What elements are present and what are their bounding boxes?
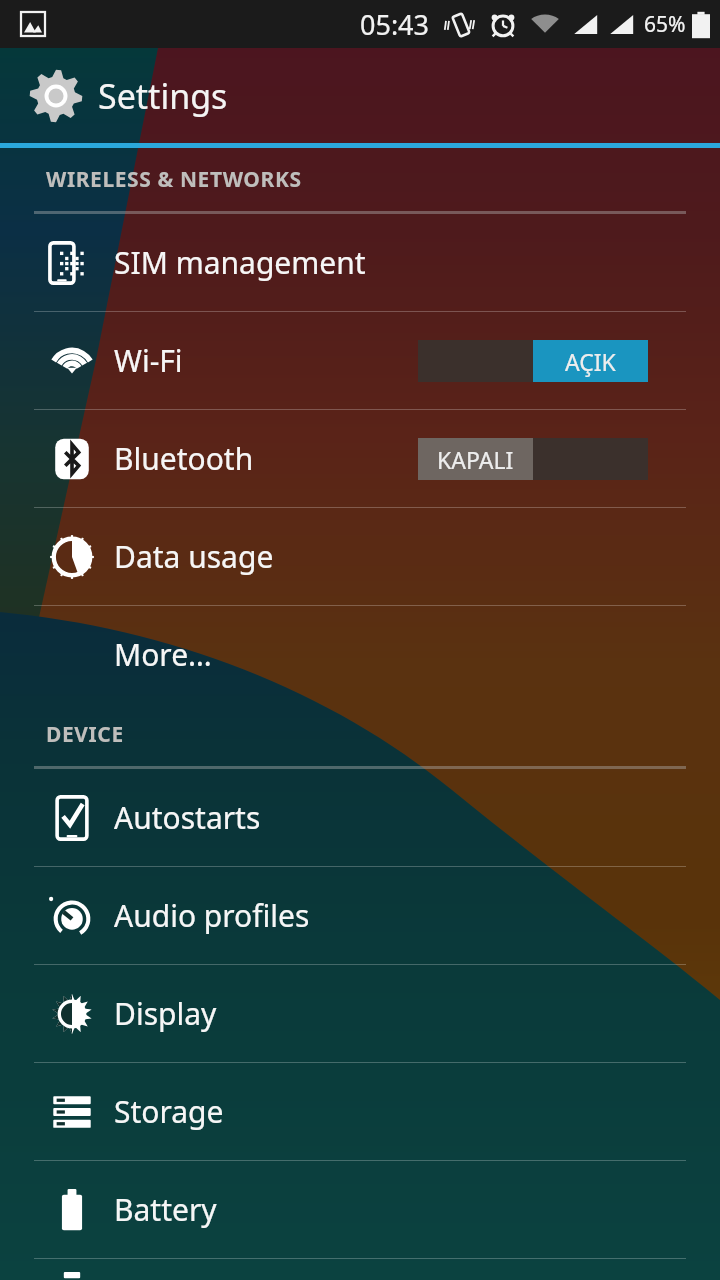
staticText: Bluetooth	[114, 438, 254, 479]
button[interactable]: Audio profiles	[0, 867, 720, 964]
staticText: Data usage	[114, 536, 274, 577]
staticText: WIRELESS & NETWORKS	[46, 165, 302, 194]
button[interactable]: More…	[0, 606, 720, 703]
staticText: Wi-Fi	[114, 340, 183, 381]
button[interactable]: Off	[418, 438, 648, 480]
button[interactable]: Wi-Fi	[0, 312, 720, 409]
button[interactable]: SIM management	[0, 214, 720, 311]
staticText: SIM management	[114, 242, 366, 283]
button[interactable]: Settings	[0, 48, 720, 143]
button[interactable]: Data usage	[0, 508, 720, 605]
button[interactable]: Bluetooth	[0, 410, 720, 507]
staticText: KAPALI	[437, 444, 514, 475]
staticText: 05:43	[360, 6, 430, 43]
staticText: DEVICE	[46, 720, 124, 749]
button[interactable]: Display	[0, 965, 720, 1062]
staticText: 65%	[644, 10, 686, 39]
button[interactable]: On	[418, 340, 648, 382]
staticText: AÇIK	[565, 346, 616, 377]
staticText: Battery	[114, 1189, 217, 1230]
staticText: Display	[114, 993, 217, 1034]
staticText: More…	[114, 634, 212, 675]
staticText: Autostarts	[114, 797, 261, 838]
staticText: Settings	[98, 73, 228, 119]
staticText: Audio profiles	[114, 895, 310, 936]
button[interactable]	[0, 1259, 720, 1280]
staticText: Storage	[114, 1091, 224, 1132]
other: Settings	[28, 68, 84, 124]
button[interactable]: Storage	[0, 1063, 720, 1160]
button[interactable]: Battery	[0, 1161, 720, 1258]
button[interactable]: Autostarts	[0, 769, 720, 866]
